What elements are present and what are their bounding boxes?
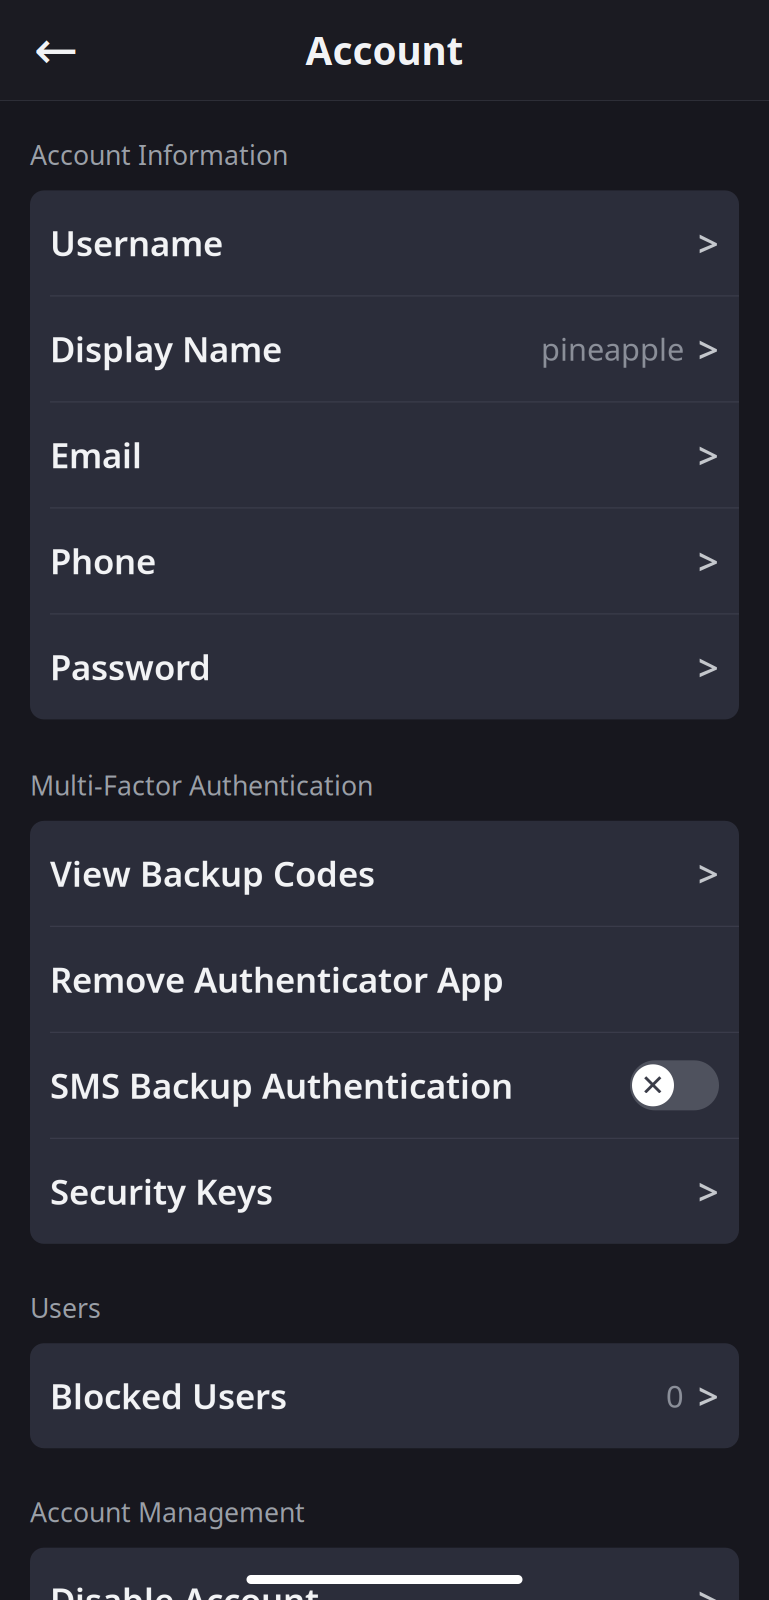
staticText: >	[698, 537, 719, 585]
button[interactable]: Display Name	[30, 296, 739, 401]
staticText: Account	[305, 24, 463, 76]
staticText: View Backup Codes	[50, 850, 375, 896]
staticText: >	[698, 1372, 719, 1420]
staticText: Multi-Factor Authentication	[30, 767, 373, 803]
button[interactable]: SMS Backup Authentication toggle, off	[630, 1060, 719, 1110]
staticText: Username	[50, 220, 223, 266]
button[interactable]: Email	[30, 402, 739, 507]
staticText: Disable Account	[50, 1577, 319, 1600]
button[interactable]: Blocked Users	[30, 1343, 739, 1448]
staticText: Account Management	[30, 1494, 305, 1530]
staticText: >	[698, 219, 719, 267]
staticText: Account Information	[30, 137, 288, 172]
staticText: Blocked Users	[50, 1373, 287, 1419]
staticText: >	[698, 431, 719, 479]
staticText: pineapple	[541, 329, 684, 369]
staticText: >	[698, 1576, 719, 1600]
button[interactable]: Remove Authenticator App	[30, 927, 739, 1032]
staticText: 0	[666, 1375, 684, 1416]
staticText: Users	[30, 1290, 101, 1325]
staticText: Phone	[50, 538, 156, 584]
button[interactable]: Disable Account	[30, 1548, 739, 1600]
button[interactable]: Security Keys	[30, 1139, 739, 1244]
staticText: >	[698, 1167, 719, 1215]
button[interactable]: View Backup Codes	[30, 821, 739, 926]
button[interactable]: Username	[30, 190, 739, 295]
staticText: ✕	[640, 1069, 665, 1102]
staticText: Email	[50, 432, 142, 478]
button[interactable]: Password	[30, 614, 739, 719]
staticText: ←	[33, 20, 78, 80]
staticText: Security Keys	[50, 1168, 273, 1214]
button[interactable]: Back	[24, 18, 88, 82]
staticText: >	[698, 325, 719, 373]
staticText: Password	[50, 644, 211, 690]
staticText: >	[698, 849, 719, 897]
staticText: Remove Authenticator App	[50, 956, 504, 1002]
button[interactable]: SMS Backup Authentication	[30, 1033, 739, 1138]
staticText: Display Name	[50, 326, 282, 372]
staticText: SMS Backup Authentication	[50, 1062, 513, 1108]
button[interactable]: Phone	[30, 508, 739, 613]
staticText: >	[698, 643, 719, 691]
